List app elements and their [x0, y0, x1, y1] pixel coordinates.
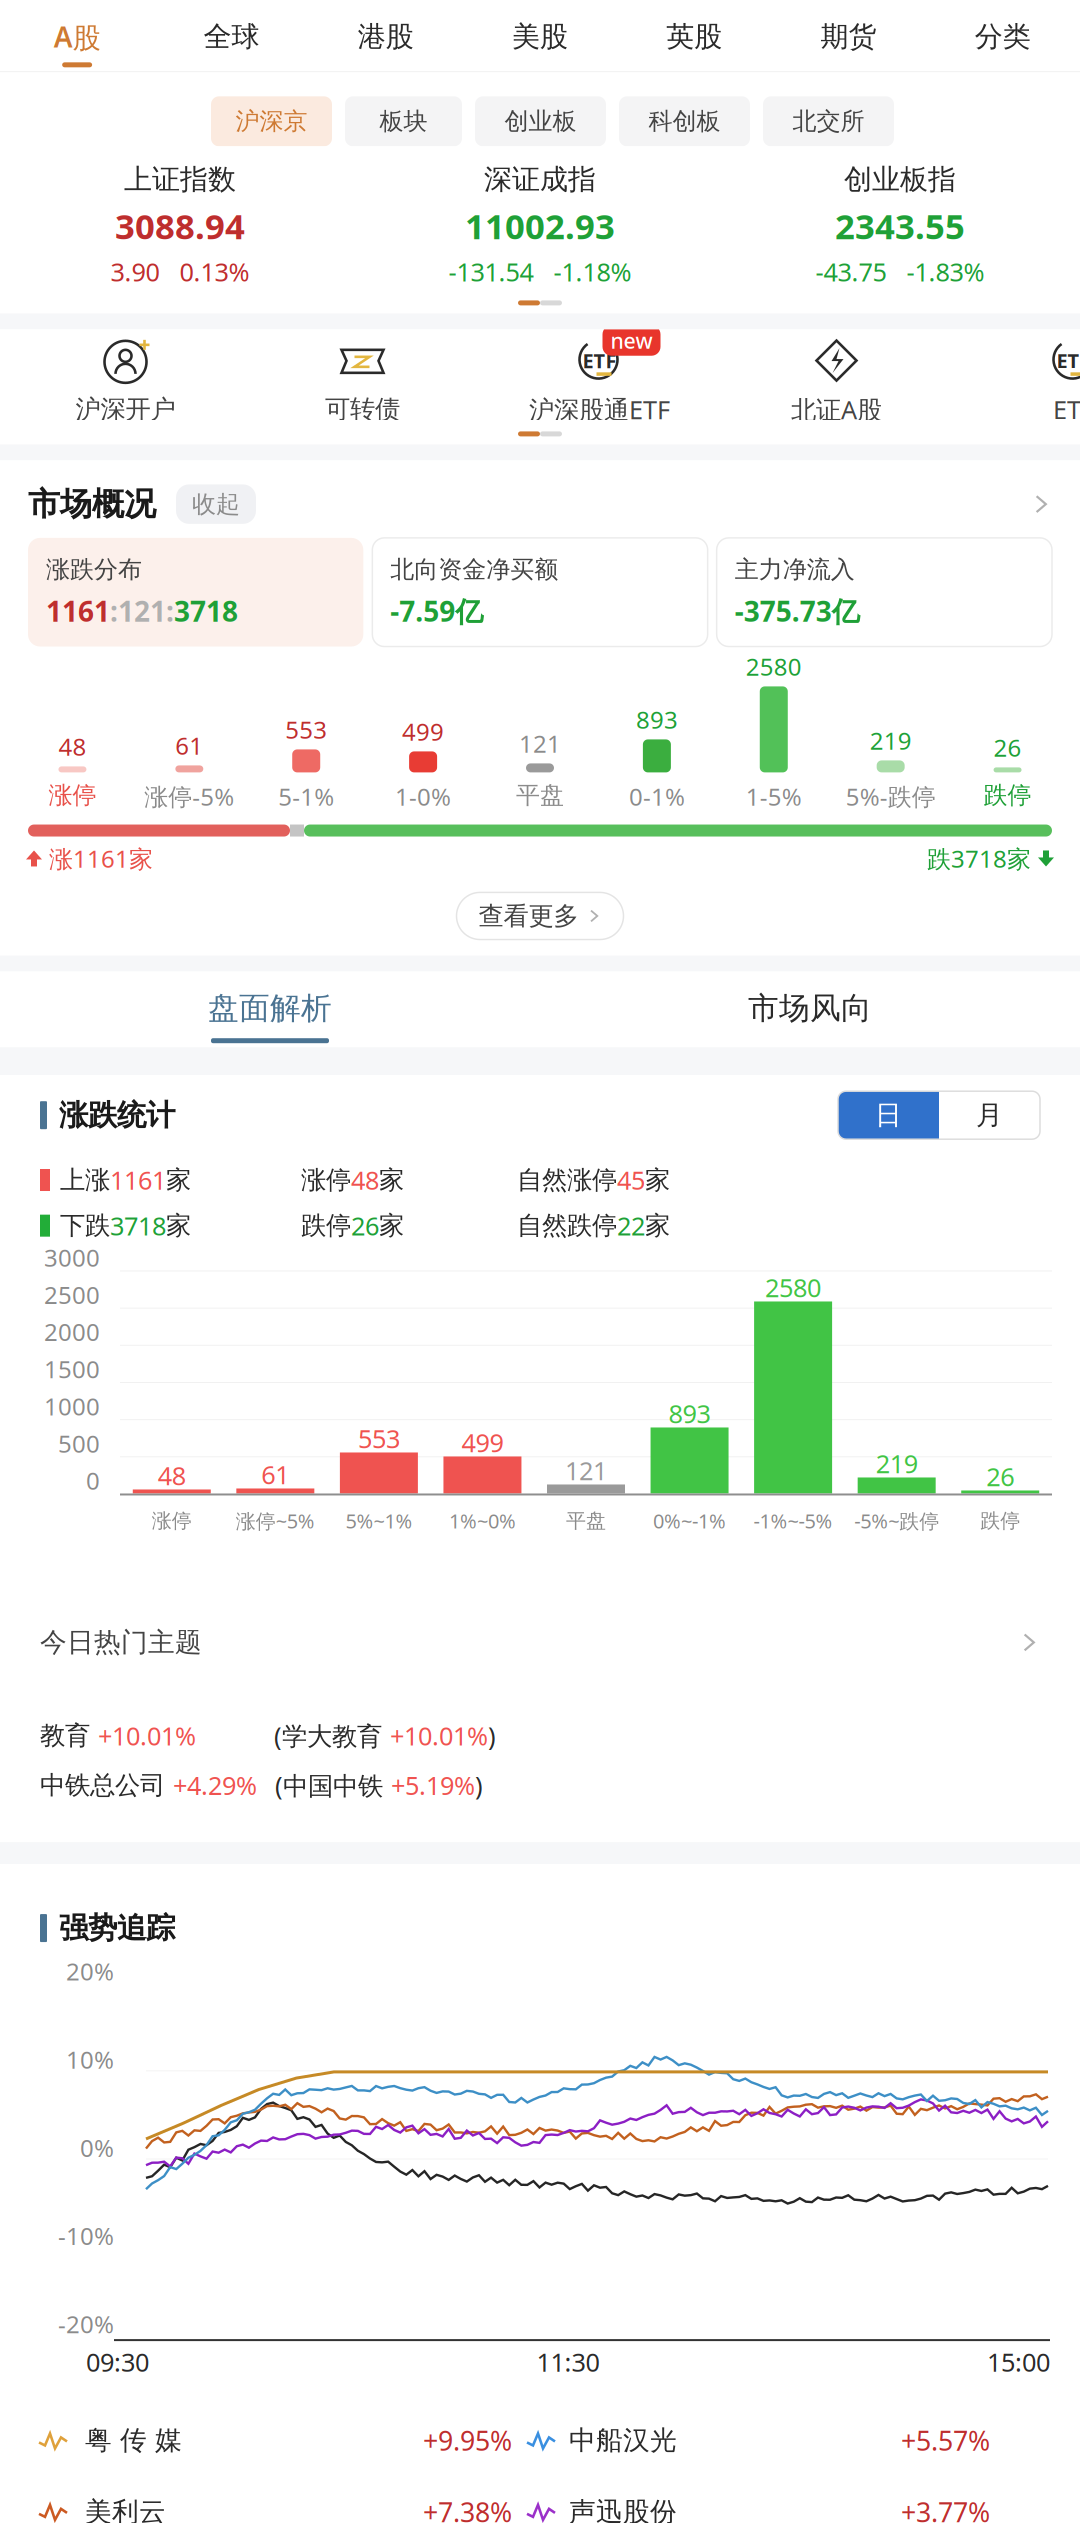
- staticText: 北证A股: [791, 393, 882, 426]
- button[interactable]: 更多主题: [1018, 1631, 1040, 1653]
- button[interactable]: 月: [939, 1091, 1040, 1139]
- button[interactable]: 市场风向: [540, 989, 1080, 1043]
- staticText: 可转债: [325, 394, 400, 425]
- staticText: 553: [285, 713, 327, 745]
- staticText: 日: [875, 1099, 902, 1132]
- staticText: ETF: [1053, 393, 1080, 426]
- button[interactable]: 美利云: [0, 2494, 512, 2523]
- staticText: 英股: [666, 19, 722, 54]
- staticText: 沪深股通ETF: [529, 393, 670, 426]
- staticText: 跌停: [301, 1210, 351, 1241]
- staticText: 11002.93: [465, 203, 615, 249]
- staticText: ): [488, 1719, 496, 1752]
- staticText: 22: [617, 1209, 645, 1242]
- button[interactable]: A股: [0, 0, 154, 71]
- staticText: 1-0%: [395, 780, 451, 812]
- button[interactable]: 科创板: [619, 96, 750, 146]
- staticText: 家: [645, 1164, 670, 1196]
- staticText: 893: [669, 1397, 711, 1430]
- staticText: 平盘: [516, 780, 564, 810]
- button[interactable]: 美股: [463, 1, 617, 70]
- button[interactable]: 期货: [771, 1, 926, 70]
- staticText: 教育: [40, 1720, 98, 1751]
- staticText: 0%: [80, 2132, 114, 2164]
- staticText: ETF: [1056, 347, 1080, 374]
- staticText: 期货: [821, 19, 877, 54]
- staticText: 市场风向: [748, 989, 872, 1027]
- button[interactable]: 可转债: [244, 338, 481, 425]
- button[interactable]: 中船汉光: [512, 2423, 1080, 2458]
- staticText: 11:30: [536, 2345, 599, 2379]
- staticText: 2343.55: [835, 203, 965, 249]
- staticText: 2580: [746, 650, 802, 682]
- staticText: 2580: [765, 1271, 821, 1304]
- staticText: 涨停~5%: [236, 1507, 315, 1534]
- staticText: (中国中铁: [275, 1768, 391, 1802]
- button[interactable]: 北交所: [763, 96, 894, 146]
- staticText: 跌停: [980, 1508, 1020, 1533]
- staticText: +4.29%: [173, 1768, 257, 1802]
- staticText: 1%~0%: [449, 1507, 516, 1534]
- staticText: -1.83%: [906, 255, 984, 288]
- staticText: 自然涨停: [517, 1164, 617, 1196]
- staticText: 219: [876, 1447, 918, 1480]
- staticText: 分类: [975, 19, 1031, 54]
- staticText: -10%: [58, 2220, 114, 2252]
- staticText: 0.13%: [179, 255, 249, 288]
- staticText: 121: [519, 727, 561, 759]
- button[interactable]: 沪深京: [211, 96, 332, 146]
- staticText: 板块: [379, 107, 427, 136]
- button[interactable]: 港股: [309, 1, 463, 70]
- button[interactable]: 北证A股: [718, 337, 955, 426]
- staticText: 上涨: [60, 1164, 110, 1196]
- staticText: +5.19%: [391, 1768, 475, 1802]
- staticText: 涨跌分布: [46, 555, 142, 584]
- staticText: 创业板: [504, 107, 576, 136]
- staticText: 科创板: [648, 107, 720, 136]
- button[interactable]: 声迅股份: [512, 2494, 1080, 2523]
- staticText: 0%~-1%: [653, 1507, 726, 1534]
- staticText: -43.75: [815, 255, 886, 288]
- button[interactable]: 日: [838, 1091, 939, 1139]
- staticText: +5.57%: [901, 2423, 990, 2458]
- button[interactable]: 板块: [345, 96, 462, 146]
- staticText: 26: [986, 1460, 1014, 1493]
- staticText: +3.77%: [901, 2494, 990, 2523]
- staticText: 涨停: [48, 780, 96, 810]
- button[interactable]: 收起: [176, 484, 256, 524]
- staticText: 553: [358, 1422, 400, 1455]
- staticText: 121: [565, 1454, 607, 1487]
- staticText: -1%~-5%: [754, 1507, 833, 1534]
- button[interactable]: 盘面解析: [0, 989, 540, 1043]
- button[interactable]: ETF: [481, 337, 718, 426]
- staticText: 3000: [44, 1241, 100, 1273]
- staticText: 月: [976, 1099, 1003, 1132]
- button[interactable]: 全球: [154, 1, 309, 70]
- staticText: 26: [351, 1209, 379, 1242]
- staticText: +7.38%: [423, 2494, 512, 2523]
- staticText: 2000: [44, 1316, 100, 1348]
- staticText: ETF: [582, 347, 616, 374]
- staticText: new: [610, 326, 652, 355]
- button[interactable]: ETF: [955, 337, 1080, 426]
- button[interactable]: 分类: [926, 1, 1080, 70]
- staticText: 主力净流入: [735, 555, 855, 584]
- button[interactable]: 沪深开户: [7, 338, 244, 425]
- staticText: 北交所: [792, 107, 864, 136]
- staticText: 涨1161家: [42, 842, 153, 874]
- button[interactable]: 市场概况详情: [1030, 493, 1052, 515]
- staticText: 1-5%: [746, 780, 802, 812]
- staticText: 3088.94: [115, 203, 245, 249]
- button[interactable]: 粤 传 媒: [0, 2423, 512, 2458]
- staticText: ): [475, 1768, 483, 1802]
- staticText: 61: [261, 1458, 289, 1491]
- staticText: 中船汉光: [569, 2424, 677, 2457]
- button[interactable]: 查看更多: [456, 892, 623, 939]
- button[interactable]: 英股: [617, 1, 771, 70]
- staticText: 26: [994, 731, 1022, 763]
- staticText: 强势追踪: [59, 1910, 175, 1946]
- staticText: 3718: [174, 592, 238, 630]
- button[interactable]: 创业板: [475, 96, 606, 146]
- staticText: 港股: [358, 19, 414, 54]
- staticText: 61: [175, 729, 203, 761]
